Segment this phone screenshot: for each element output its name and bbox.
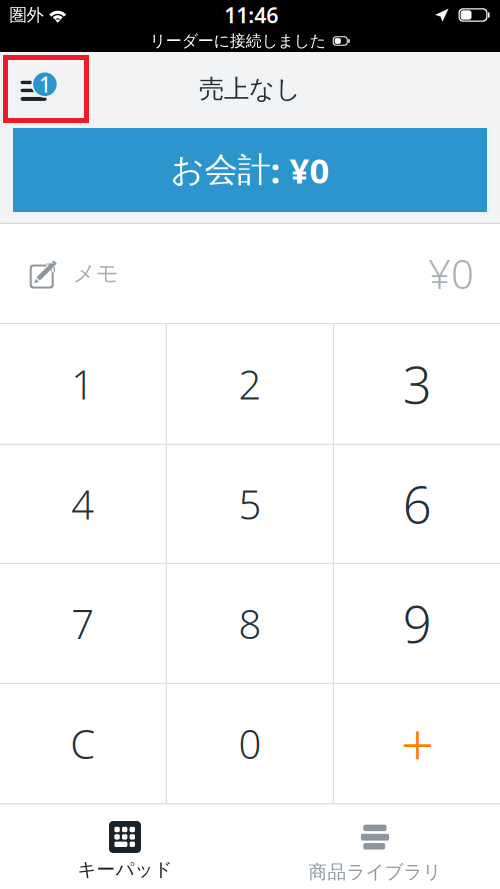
button[interactable]: 9 [334, 564, 500, 683]
button[interactable]: 8 [167, 564, 333, 683]
staticText: お会計 [170, 149, 270, 190]
staticText: 8 [238, 597, 261, 650]
staticText: 圏外 [9, 4, 43, 26]
button[interactable]: キーパッド [0, 805, 250, 889]
staticText: 0 [238, 717, 261, 770]
staticText: ¥0 [428, 247, 474, 300]
staticText: : ¥0 [270, 147, 329, 193]
staticText: 2 [238, 357, 261, 410]
staticText: 4 [71, 477, 94, 530]
staticText: + [401, 704, 434, 782]
button[interactable]: 4 [0, 445, 166, 563]
staticText: 商品ライブラリ [308, 861, 441, 883]
staticText: 9 [403, 590, 432, 657]
button[interactable]: 7 [0, 564, 166, 683]
button[interactable]: 0 [167, 684, 333, 803]
button[interactable]: メニュー [3, 55, 89, 123]
staticText: メモ [73, 260, 119, 287]
button[interactable]: C [0, 684, 166, 803]
staticText: 売上なし [199, 73, 301, 104]
staticText: 6 [403, 470, 432, 538]
button[interactable]: お会計 [13, 128, 487, 212]
button[interactable]: 1 [0, 324, 166, 444]
staticText: 1 [39, 70, 51, 98]
button[interactable]: 商品ライブラリ [250, 805, 500, 889]
button[interactable]: + [334, 684, 500, 803]
staticText: 5 [238, 477, 261, 530]
button[interactable]: 2 [167, 324, 333, 444]
button[interactable]: 6 [334, 445, 500, 563]
staticText: キーパッド [77, 858, 172, 881]
staticText: 7 [71, 597, 94, 650]
staticText: C [70, 717, 95, 770]
staticText: リーダーに接続しました [150, 31, 326, 51]
button[interactable]: メモ [0, 224, 500, 323]
button[interactable]: 3 [334, 324, 500, 444]
button[interactable]: 5 [167, 445, 333, 563]
staticText: 11:46 [224, 1, 278, 29]
staticText: 3 [403, 350, 432, 418]
staticText: 1 [71, 357, 94, 410]
